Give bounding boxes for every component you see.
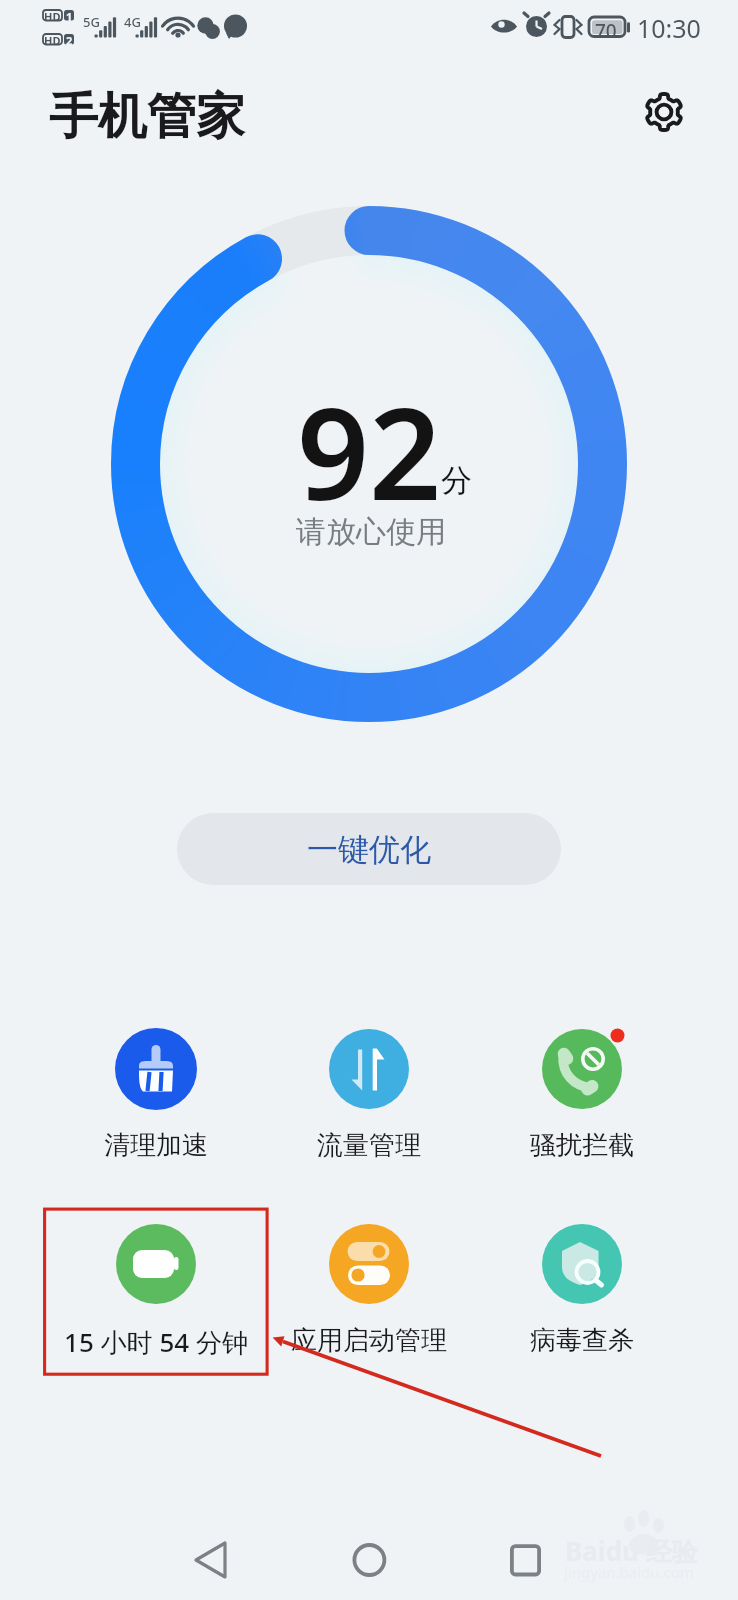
staticText: Baidu 经验 (565, 1533, 698, 1569)
button[interactable]: Recent apps (484, 1517, 564, 1597)
button[interactable]: Home (330, 1517, 410, 1597)
staticText: 70 (595, 18, 617, 44)
staticText: 2 (66, 33, 73, 48)
staticText: 清理加速 (48, 1129, 264, 1162)
staticText: 请放心使用 (296, 513, 446, 551)
staticText: 10:30 (637, 11, 701, 45)
staticText: 手机管家 (49, 86, 245, 148)
button[interactable]: Battery (48, 1216, 264, 1358)
button[interactable]: Data manager (261, 1021, 477, 1163)
button[interactable]: App launch manager (261, 1216, 477, 1358)
staticText: 一键优化 (307, 830, 431, 869)
button[interactable]: Virus scan (474, 1216, 690, 1358)
button[interactable]: Back (172, 1517, 252, 1597)
staticText: 病毒查杀 (474, 1324, 690, 1357)
staticText: 骚扰拦截 (474, 1129, 690, 1162)
staticText: 4G (124, 13, 141, 31)
staticText: 15 小时 54 分钟 (48, 1324, 264, 1360)
button[interactable]: 一键优化 (177, 813, 561, 885)
button[interactable]: Clean and speed up (48, 1021, 264, 1163)
button[interactable]: Block harassment (474, 1021, 690, 1163)
staticText: HD (44, 33, 61, 48)
staticText: 分 (441, 461, 472, 500)
staticText: 5G (83, 13, 100, 31)
staticText: 92 (297, 365, 442, 537)
button[interactable]: Settings (634, 82, 694, 142)
staticText: HD (44, 9, 61, 24)
staticText: 流量管理 (261, 1129, 477, 1162)
staticText: 1 (66, 9, 73, 24)
staticText: 应用启动管理 (261, 1324, 477, 1357)
